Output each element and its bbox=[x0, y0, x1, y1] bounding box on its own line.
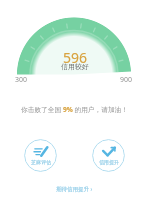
staticText: 300 bbox=[15, 75, 28, 85]
button[interactable]: 期待信用提升 › bbox=[56, 185, 93, 193]
staticText: 你击败了全国 9% 的用户，请加油！ bbox=[21, 105, 128, 114]
button[interactable]: 信用提升 bbox=[92, 139, 125, 172]
staticText: 期待信用提升 › bbox=[56, 185, 93, 193]
staticText: 信用提升 bbox=[99, 159, 119, 165]
button[interactable]: 芝麻评估 bbox=[24, 139, 57, 172]
staticText: 信用较好 bbox=[61, 62, 89, 71]
staticText: 芝麻评估 bbox=[31, 159, 51, 165]
staticText: 596 bbox=[63, 48, 88, 67]
staticText: 900 bbox=[120, 75, 133, 85]
